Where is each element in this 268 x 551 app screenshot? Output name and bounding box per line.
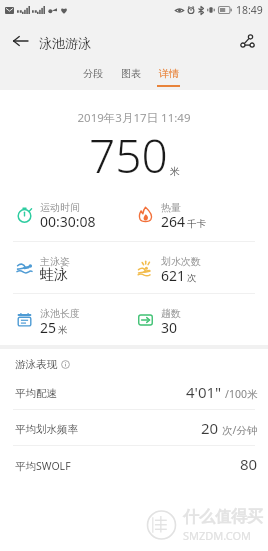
button[interactable]: Back: [6, 27, 34, 55]
staticText: 264: [161, 212, 186, 231]
staticText: 621: [161, 266, 186, 285]
button[interactable]: [8, 249, 122, 297]
staticText: 千卡: [187, 218, 206, 230]
staticText: 泳池长度: [40, 307, 80, 320]
staticText: 图表: [121, 67, 141, 80]
staticText: 平均划水频率: [15, 423, 78, 436]
staticText: 4'01": [186, 382, 222, 402]
staticText: /100米: [225, 387, 258, 401]
staticText: 主泳姿: [40, 255, 70, 268]
button[interactable]: 图表: [115, 62, 147, 90]
button[interactable]: [129, 195, 243, 243]
staticText: 蛙泳: [40, 266, 68, 284]
button[interactable]: [8, 195, 122, 243]
button[interactable]: 游泳表现: [15, 358, 70, 371]
staticText: 平均SWOLF: [15, 459, 71, 473]
button[interactable]: 平均SWOLF: [0, 446, 268, 481]
button[interactable]: [129, 301, 243, 349]
staticText: 泳池游泳: [39, 35, 91, 51]
staticText: 什么值得买: [183, 507, 263, 527]
staticText: 18:49: [236, 3, 263, 17]
staticText: 次: [187, 272, 197, 284]
button[interactable]: 平均划水频率: [0, 410, 268, 445]
staticText: 运动时间: [40, 201, 80, 214]
staticText: 游泳表现: [15, 358, 57, 371]
staticText: 30: [161, 318, 178, 337]
staticText: 分段: [83, 67, 103, 80]
staticText: 米: [58, 324, 68, 336]
staticText: 25: [40, 318, 57, 337]
staticText: 热量: [161, 201, 181, 214]
button[interactable]: 分段: [77, 62, 109, 90]
staticText: 750: [89, 124, 168, 187]
button[interactable]: [8, 301, 122, 349]
staticText: 平均配速: [15, 387, 57, 400]
staticText: 趟数: [161, 307, 181, 320]
staticText: 80: [240, 454, 258, 474]
staticText: 20: [201, 418, 219, 438]
staticText: 次/分钟: [222, 423, 258, 437]
staticText: SMZDM.COM: [183, 528, 252, 543]
staticText: 2019年3月17日 11:49: [0, 110, 268, 126]
staticText: 划水次数: [161, 255, 201, 268]
button[interactable]: 平均配速: [0, 374, 268, 409]
staticText: 米: [170, 165, 180, 178]
staticText: 00:30:08: [40, 212, 96, 231]
button[interactable]: Share: [233, 26, 262, 55]
button[interactable]: 详情: [152, 62, 184, 90]
staticText: 详情: [159, 67, 179, 80]
button[interactable]: [129, 249, 243, 297]
